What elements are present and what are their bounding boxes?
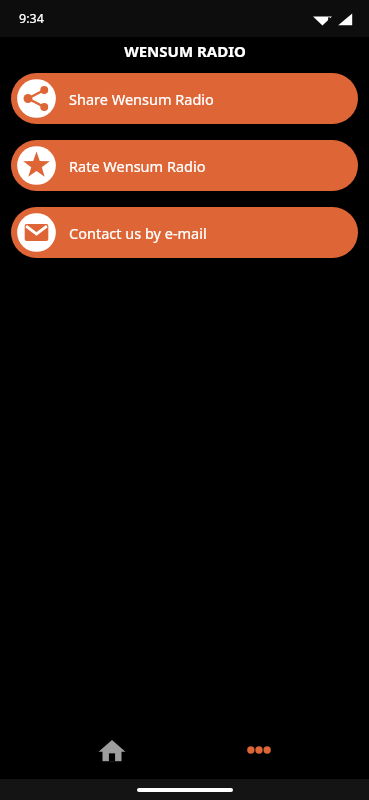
staticText: WENSUM RADIO bbox=[124, 41, 246, 61]
staticText: Contact us by e-mail bbox=[69, 223, 207, 243]
button[interactable]: Rate Wensum Radio bbox=[11, 140, 358, 191]
staticText: 9:34 bbox=[19, 10, 44, 27]
staticText: Share Wensum Radio bbox=[69, 89, 214, 109]
staticText: Rate Wensum Radio bbox=[69, 156, 206, 176]
button[interactable]: Contact us by e-mail bbox=[11, 207, 358, 258]
button[interactable]: Home bbox=[80, 726, 144, 774]
button[interactable]: More options bbox=[232, 726, 286, 774]
button[interactable]: Share Wensum Radio bbox=[11, 73, 358, 124]
